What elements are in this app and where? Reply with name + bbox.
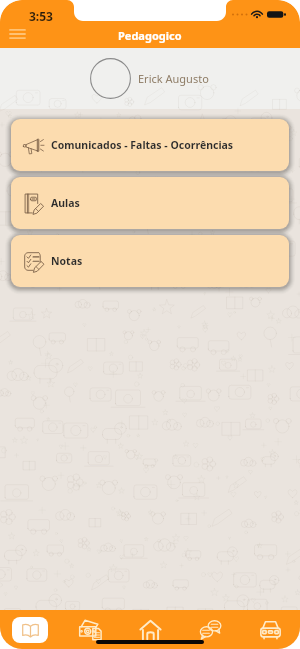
staticText: Aulas: [51, 196, 80, 210]
button[interactable]: Notas: [11, 235, 289, 287]
button[interactable]: Pedagogico: [0, 610, 60, 649]
button[interactable]: Financeiro: [60, 610, 120, 649]
staticText: 3:53: [29, 8, 53, 24]
staticText: Erick Augusto: [138, 71, 209, 86]
button[interactable]: Comunicados - Faltas - Ocorrências: [11, 119, 289, 171]
button[interactable]: Home: [120, 610, 180, 649]
staticText: Notas: [51, 254, 83, 268]
button[interactable]: Mensagens: [180, 610, 240, 649]
staticText: Pedagogico: [118, 28, 182, 43]
staticText: Comunicados - Faltas - Ocorrências: [51, 138, 234, 152]
button[interactable]: Aulas: [11, 177, 289, 229]
button[interactable]: Menu: [2, 23, 32, 45]
button[interactable]: Transporte: [240, 610, 300, 649]
